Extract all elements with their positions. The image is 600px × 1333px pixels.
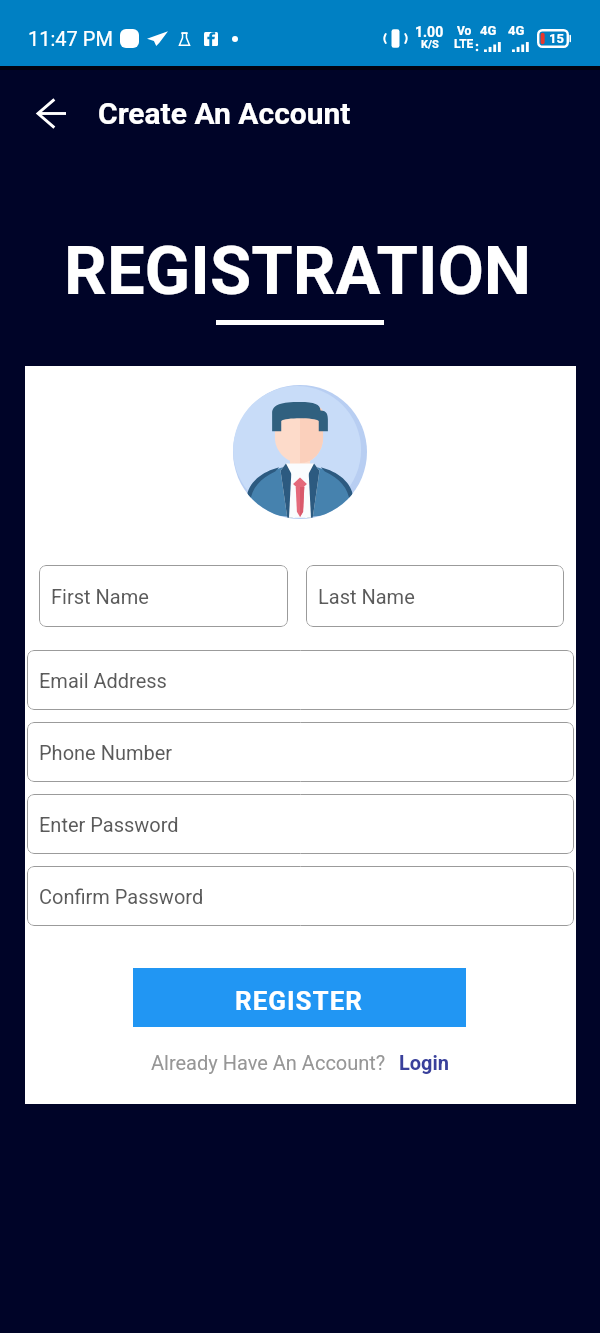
- button[interactable]: Back: [24, 85, 80, 141]
- button[interactable]: Email Address: [27, 650, 574, 710]
- staticText: REGISTRATION: [64, 232, 532, 311]
- staticText: First Name: [51, 585, 149, 608]
- button[interactable]: REGISTER: [133, 968, 466, 1027]
- staticText: Login: [399, 1051, 450, 1074]
- staticText: Confirm Password: [39, 885, 204, 908]
- button[interactable]: First Name: [39, 565, 288, 627]
- button[interactable]: Last Name: [306, 565, 564, 627]
- staticText: Already Have An Account?: [151, 1051, 386, 1074]
- staticText: Phone Number: [39, 741, 173, 764]
- staticText: 1.00: [415, 24, 444, 40]
- button[interactable]: Login: [399, 1051, 450, 1074]
- staticText: 4G: [508, 23, 525, 38]
- staticText: Enter Password: [39, 813, 179, 836]
- staticText: 4G: [480, 23, 497, 38]
- staticText: 11:47 PM: [28, 27, 113, 50]
- button[interactable]: Enter Password: [27, 794, 574, 854]
- staticText: Email Address: [39, 669, 167, 692]
- staticText: Vo: [457, 24, 472, 38]
- staticText: REGISTER: [235, 986, 364, 1016]
- staticText: LTE: [454, 37, 474, 51]
- staticText: Create An Account: [98, 96, 351, 131]
- button[interactable]: Phone Number: [27, 722, 574, 782]
- staticText: 15: [549, 31, 564, 46]
- staticText: Last Name: [318, 585, 415, 608]
- button[interactable]: Confirm Password: [27, 866, 574, 926]
- staticText: K/S: [421, 38, 439, 51]
